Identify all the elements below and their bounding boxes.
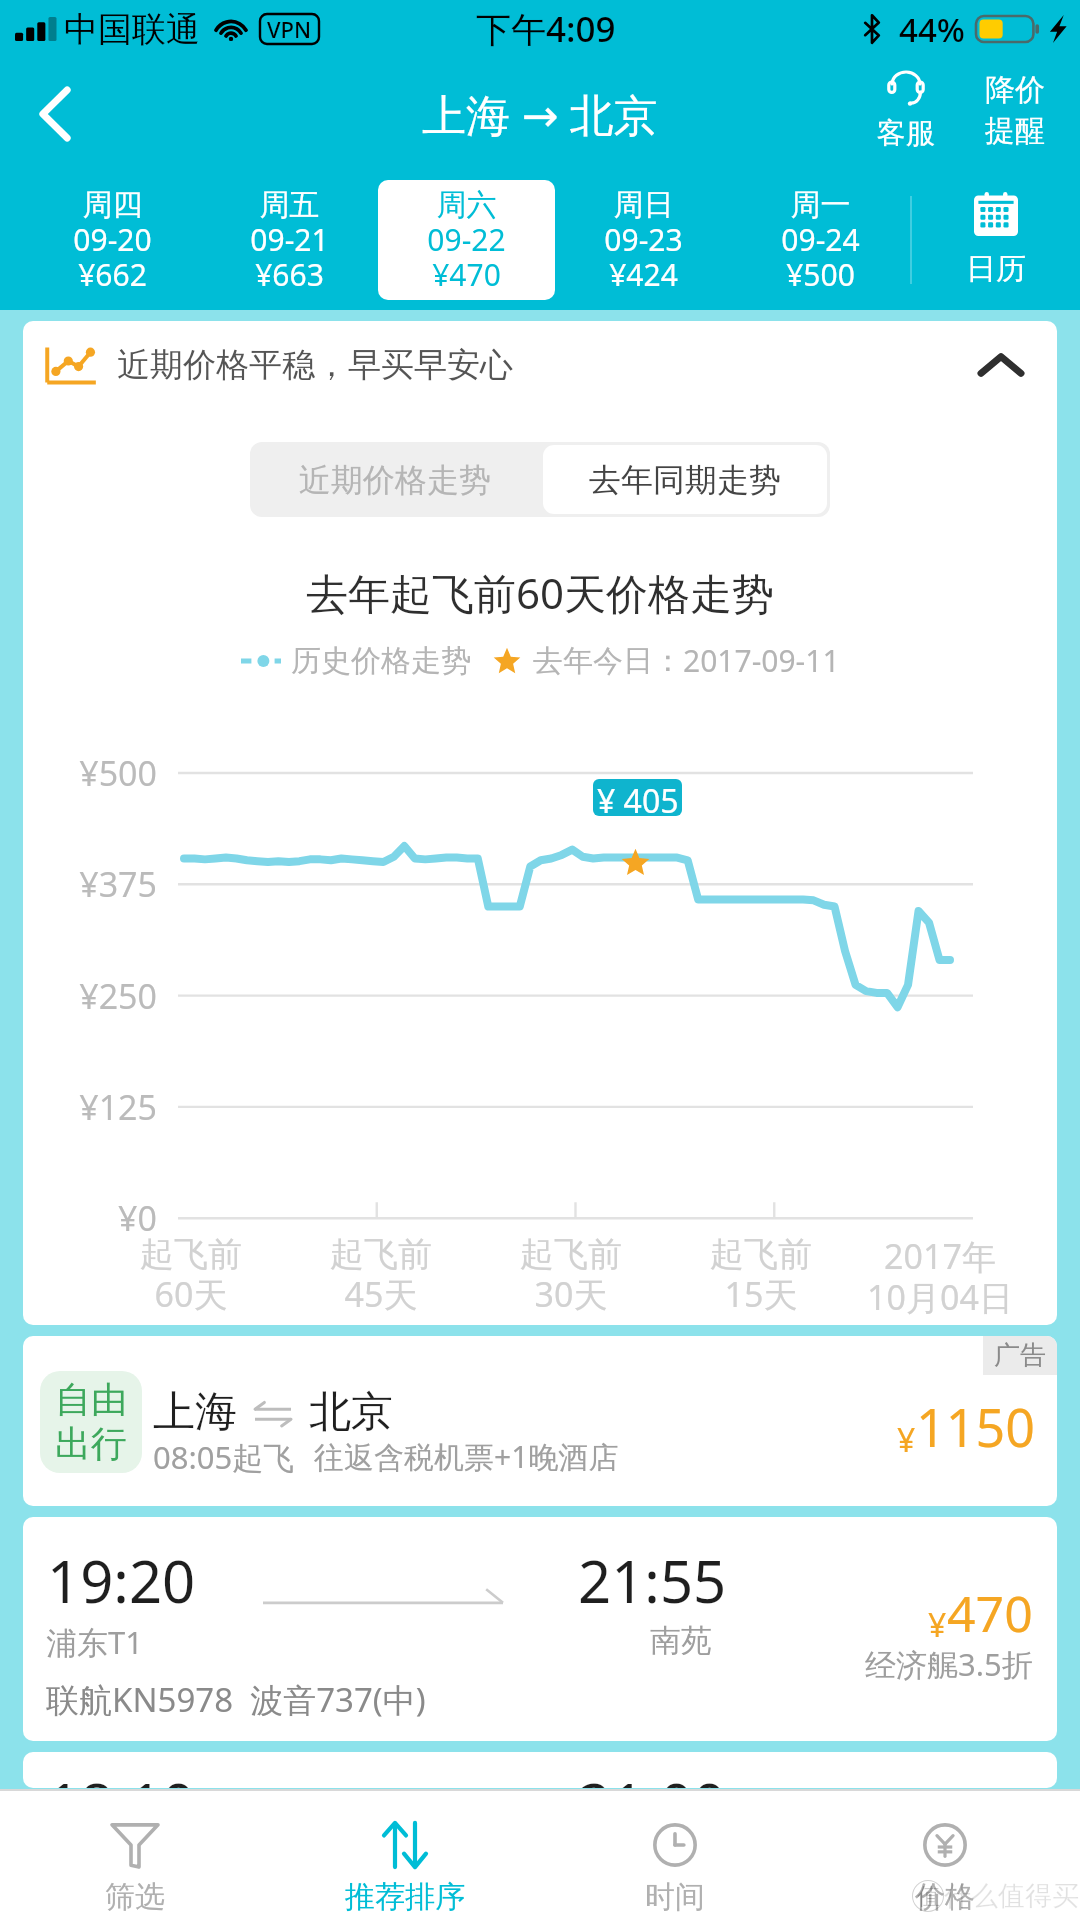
button[interactable]: 周四 09-20 ¥662 — [24, 180, 201, 300]
staticText: 18:10 — [47, 1764, 196, 1788]
staticText: ¥ — [897, 1418, 916, 1462]
button[interactable]: 18:10 — [23, 1752, 1057, 1788]
button[interactable]: 周一 09-24 ¥500 — [732, 180, 909, 300]
staticText: 推荐排序 — [345, 1878, 465, 1916]
button[interactable]: 19:20 — [23, 1517, 1057, 1741]
staticText: 往返含税机票+1晚酒店 — [314, 1436, 619, 1477]
staticText: 周六 09-22 ¥470 — [378, 186, 555, 295]
staticText: 去年今日： — [533, 642, 683, 680]
staticText: 筛选 — [105, 1878, 165, 1916]
button[interactable]: 近期价格平稳，早买早安心 — [23, 321, 1057, 409]
staticText: 周日 09-23 ¥424 — [555, 186, 732, 295]
staticText: 什么值得买 — [944, 1879, 1079, 1913]
staticText: ¥500 — [79, 750, 157, 796]
staticText: 近期价格走势 — [299, 460, 491, 500]
staticText: 21:55 — [578, 1541, 727, 1620]
staticText: 浦东T1 — [46, 1621, 143, 1663]
staticText: 周五 09-21 ¥663 — [201, 186, 378, 295]
staticText: 近期价格平稳，早买早安心 — [117, 344, 513, 386]
button[interactable]: 时间 — [540, 1791, 810, 1920]
button[interactable]: 推荐排序 — [270, 1791, 540, 1920]
staticText: ¥250 — [79, 973, 157, 1019]
button[interactable]: 日历 — [912, 170, 1080, 310]
staticText: ¥0 — [118, 1195, 157, 1241]
staticText: 日历 — [966, 250, 1026, 288]
button[interactable]: 周六 09-22 ¥470 — [378, 180, 555, 300]
button[interactable]: 客服 — [852, 58, 960, 163]
button[interactable]: 广告 — [23, 1336, 1057, 1506]
staticText: 中国联通 — [64, 8, 200, 51]
staticText: ¥375 — [79, 861, 157, 907]
button[interactable]: Back — [0, 58, 110, 170]
staticText: 08:05起飞 — [153, 1436, 295, 1478]
staticText: 价格 — [915, 1878, 975, 1916]
button[interactable]: 周日 09-23 ¥424 — [555, 180, 732, 300]
staticText: 周四 09-20 ¥662 — [24, 186, 201, 295]
staticText: ¥ — [928, 1603, 947, 1647]
staticText: VPN — [267, 14, 312, 44]
staticText: 19:20 — [47, 1541, 196, 1620]
staticText: 起飞前 30天 — [471, 1233, 671, 1317]
staticText: 自由 出行 — [55, 1377, 127, 1467]
staticText: 降价 提醒 — [985, 71, 1045, 150]
button[interactable]: 近期价格走势 — [250, 442, 540, 517]
staticText: 去年起飞前60天价格走势 — [306, 564, 775, 621]
staticText: 联航KN5978 波音737(中) — [46, 1677, 426, 1722]
button[interactable]: 价格 — [810, 1791, 1080, 1920]
staticText: 起飞前 45天 — [281, 1233, 481, 1317]
staticText: 起飞前 60天 — [91, 1233, 291, 1317]
staticText: 客服 — [877, 115, 935, 152]
staticText: 时间 — [645, 1878, 705, 1916]
staticText: 1150 — [916, 1391, 1035, 1462]
staticText: 44% — [899, 7, 965, 52]
staticText: 上海 — [153, 1386, 237, 1439]
staticText: ¥125 — [79, 1084, 157, 1130]
staticText: 北京 — [309, 1386, 393, 1439]
button[interactable]: 去年同期走势 — [543, 445, 827, 514]
staticText: 广告 — [994, 1339, 1046, 1372]
button[interactable]: 周五 09-21 ¥663 — [201, 180, 378, 300]
staticText: 2017年 10月04日 — [840, 1233, 1040, 1320]
staticText: 21:00 — [578, 1764, 727, 1788]
staticText: 去年同期走势 — [589, 460, 781, 500]
staticText: 周一 09-24 ¥500 — [732, 186, 909, 295]
button[interactable]: 降价 提醒 — [960, 58, 1070, 163]
staticText: 值 — [917, 1882, 940, 1911]
staticText: ¥ 405 — [597, 779, 679, 816]
staticText: 下午4:09 — [476, 5, 616, 53]
staticText: 470 — [947, 1579, 1033, 1647]
staticText: 南苑 — [650, 1621, 712, 1660]
staticText: 上海 → 北京 — [422, 84, 658, 144]
button[interactable]: Collapse — [959, 323, 1043, 407]
staticText: 历史价格走势 — [291, 642, 471, 680]
button[interactable]: 筛选 — [0, 1791, 270, 1920]
staticText: 经济艉3.5折 — [865, 1643, 1033, 1685]
staticText: 起飞前 15天 — [661, 1233, 861, 1317]
staticText: 2017-09-11 — [683, 640, 840, 681]
